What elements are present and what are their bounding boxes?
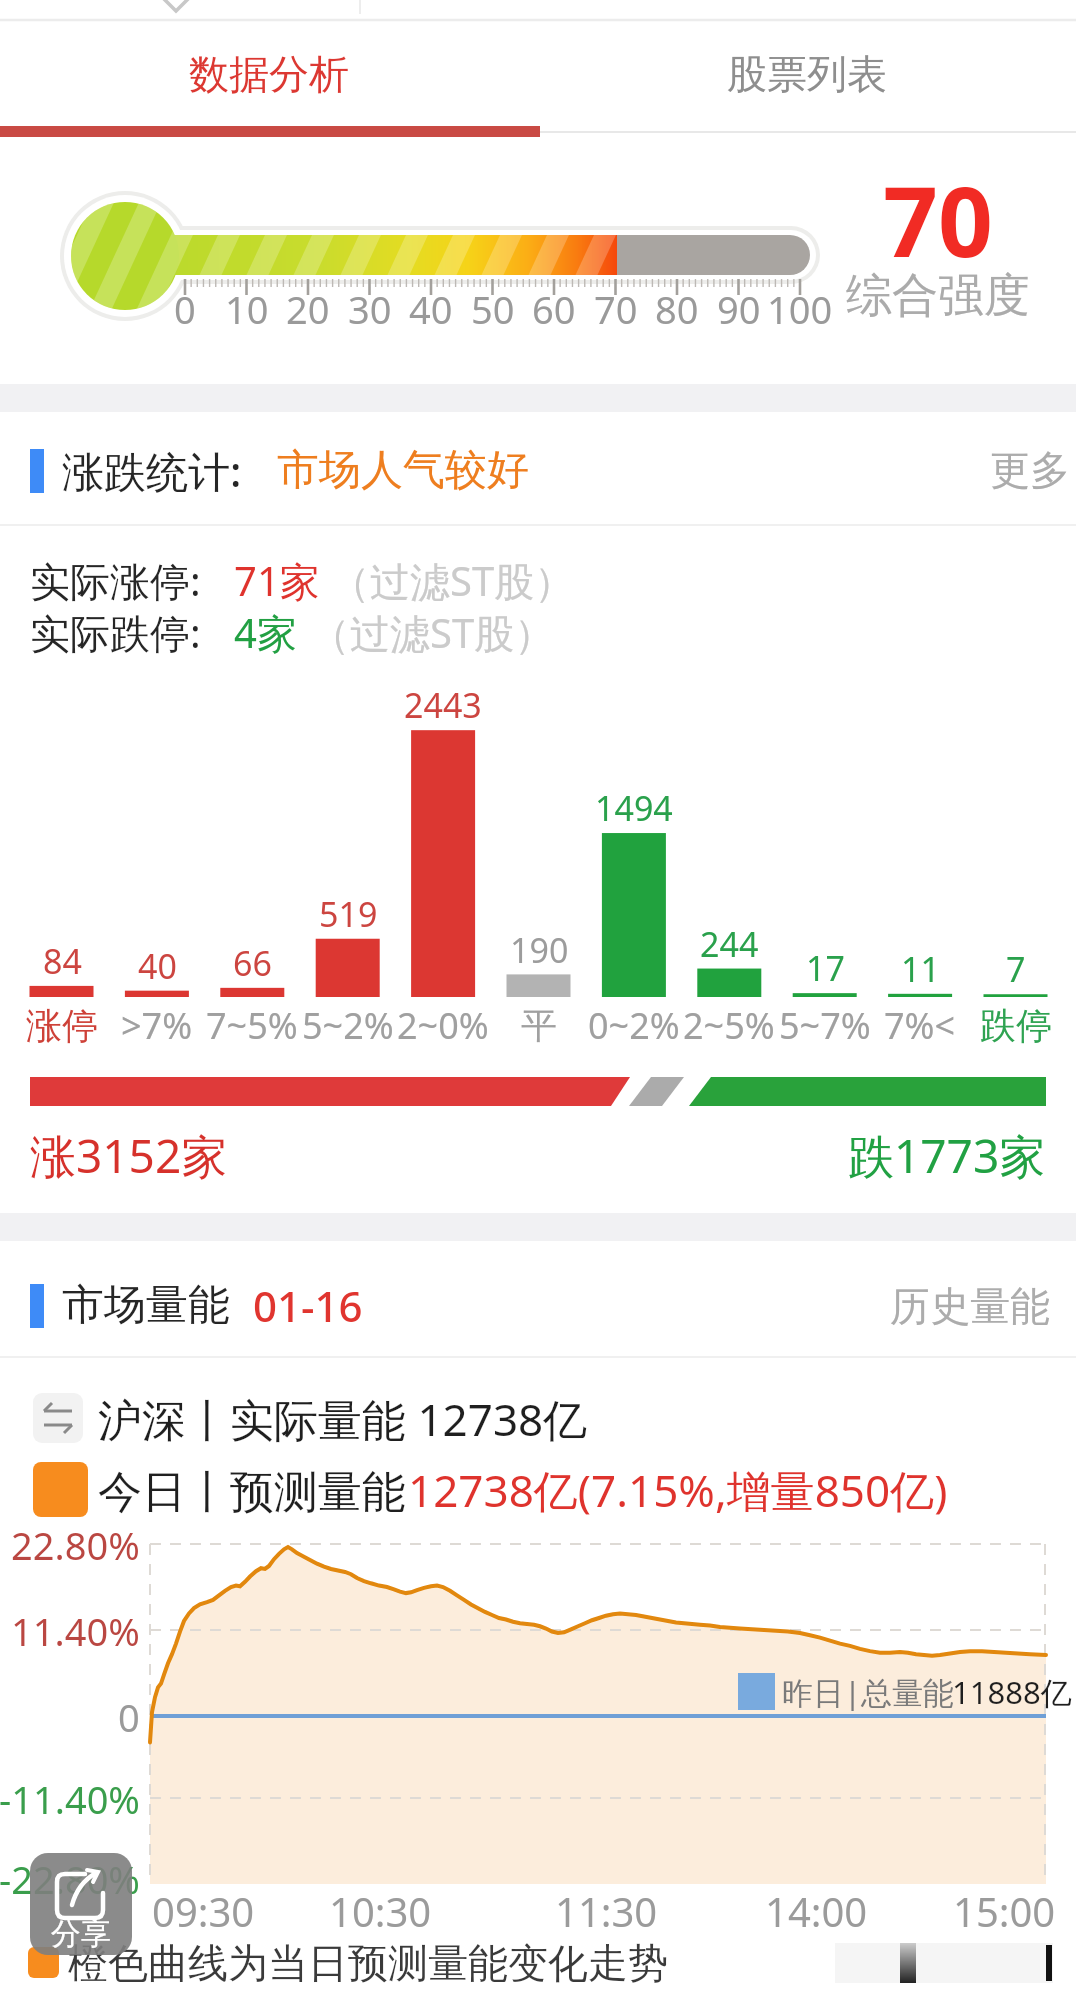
staticText: 2~5% <box>683 1001 775 1050</box>
staticText: 沪深丨实际量能 12738亿 <box>98 1389 588 1449</box>
button[interactable]: 更多 <box>940 440 1070 500</box>
staticText: 昨日|总量能 <box>782 1671 955 1713</box>
staticText: 2~0% <box>397 1001 489 1050</box>
staticText: 244 <box>700 921 759 967</box>
staticText: 跌1773家 <box>848 1124 1046 1187</box>
staticText: 17 <box>806 945 845 991</box>
staticText: 涨跌统计: <box>62 442 242 499</box>
staticText: 10 <box>225 283 269 335</box>
staticText: 40 <box>138 943 177 989</box>
staticText: 今日丨预测量能 <box>98 1460 418 1520</box>
staticText: 0~2% <box>588 1001 680 1050</box>
staticText: 市场量能 <box>62 1279 230 1332</box>
staticText: 0 <box>174 283 196 335</box>
staticText: 5~2% <box>302 1001 394 1050</box>
staticText: 40 <box>409 283 453 335</box>
staticText: 11888亿 <box>952 1671 1072 1713</box>
staticText: 80 <box>655 283 699 335</box>
staticText: -22.80% <box>0 1853 140 1905</box>
button[interactable]: 历史量能 <box>870 1276 1050 1336</box>
staticText: 90 <box>717 283 761 335</box>
staticText: 20 <box>286 283 330 335</box>
staticText: 历史量能 <box>890 1281 1050 1331</box>
staticText: 190 <box>510 927 569 973</box>
staticText: 519 <box>319 891 378 937</box>
staticText: 5~7% <box>779 1001 871 1050</box>
staticText: 09:30 <box>152 1884 255 1938</box>
staticText: 11:30 <box>555 1884 658 1938</box>
staticText: 0 <box>118 1691 140 1743</box>
staticText: 70 <box>883 154 993 285</box>
staticText: 实际跌停: <box>30 605 201 660</box>
staticText: 11 <box>901 946 940 992</box>
staticText: 7 <box>1006 946 1026 992</box>
staticText: 实际涨停: <box>30 553 201 608</box>
staticText: 30 <box>348 283 392 335</box>
staticText: 70 <box>594 283 638 335</box>
button[interactable]: 数据分析 <box>0 22 538 126</box>
staticText: 11.40% <box>11 1605 140 1657</box>
staticText: 跌停 <box>980 1003 1052 1048</box>
staticText: 14:00 <box>765 1884 868 1938</box>
staticText: 7~5% <box>206 1001 298 1050</box>
staticText: 10:30 <box>329 1884 432 1938</box>
staticText: 更多 <box>990 445 1070 495</box>
staticText: 股票列表 <box>727 49 887 99</box>
button[interactable]: 股票列表 <box>538 22 1076 126</box>
staticText: 15:00 <box>953 1884 1056 1938</box>
staticText: 66 <box>233 940 272 986</box>
staticText: 1494 <box>595 785 673 831</box>
staticText: 01-16 <box>253 1277 363 1334</box>
staticText: 71家 <box>234 553 320 608</box>
staticText: 84 <box>43 938 82 984</box>
staticText: （过滤ST股） <box>310 605 555 660</box>
staticText: 分享 <box>51 1915 111 1951</box>
staticText: 综合强度 <box>846 267 1030 325</box>
staticText: 涨停 <box>26 1003 98 1048</box>
staticText: 22.80% <box>11 1519 140 1571</box>
staticText: 平 <box>521 1003 557 1048</box>
staticText: 2443 <box>404 682 482 728</box>
staticText: 4家 <box>234 605 297 660</box>
staticText: 12738亿(7.15%,增量850亿) <box>408 1460 948 1520</box>
staticText: （过滤ST股） <box>330 553 575 608</box>
staticText: 市场人气较好 <box>277 444 529 497</box>
staticText: 数据分析 <box>189 49 349 99</box>
staticText: -11.40% <box>0 1773 140 1825</box>
staticText: 100 <box>767 283 833 335</box>
staticText: 7%< <box>884 1001 956 1050</box>
staticText: 50 <box>471 283 515 335</box>
staticText: 橙色曲线为当日预测量能变化走势 <box>68 1938 668 1988</box>
staticText: >7% <box>121 1001 193 1050</box>
staticText: 涨3152家 <box>30 1124 228 1187</box>
button[interactable]: 分享 <box>30 1853 132 1955</box>
staticText: 60 <box>532 283 576 335</box>
